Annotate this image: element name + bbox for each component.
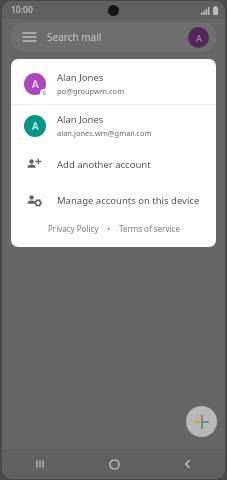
button[interactable]: Account: [188, 27, 209, 48]
staticText: 6: [43, 90, 46, 97]
button[interactable]: Open navigation drawer: [10, 22, 217, 52]
button[interactable]: Add another account: [11, 146, 216, 182]
button[interactable]: Privacy Policy: [46, 221, 101, 236]
staticText: Alan Jones: [57, 113, 104, 126]
staticText: •: [107, 223, 111, 234]
staticText: A: [32, 77, 39, 91]
button[interactable]: Open navigation drawer: [18, 26, 40, 48]
button[interactable]: Recent apps: [2, 449, 77, 479]
button[interactable]: Compose: [186, 406, 217, 437]
staticText: 10:00: [11, 4, 33, 16]
staticText: Alan Jones: [57, 71, 104, 84]
staticText: A: [196, 32, 202, 44]
staticText: Search mail: [47, 30, 102, 44]
button[interactable]: Manage accounts on this device: [11, 182, 216, 218]
staticText: A: [32, 119, 39, 133]
staticText: Terms of service: [119, 223, 180, 234]
button[interactable]: A: [11, 105, 216, 146]
staticText: po@groupwm.com: [57, 86, 125, 96]
staticText: Privacy Policy: [48, 223, 99, 234]
button[interactable]: A: [11, 63, 216, 104]
staticText: Manage accounts on this device: [57, 194, 200, 207]
button[interactable]: Home: [77, 449, 151, 479]
button[interactable]: Back: [151, 449, 225, 479]
staticText: alan.jones.wm@gmail.com: [57, 128, 152, 138]
staticText: Add another account: [57, 158, 151, 171]
button[interactable]: Terms of service: [117, 221, 182, 236]
